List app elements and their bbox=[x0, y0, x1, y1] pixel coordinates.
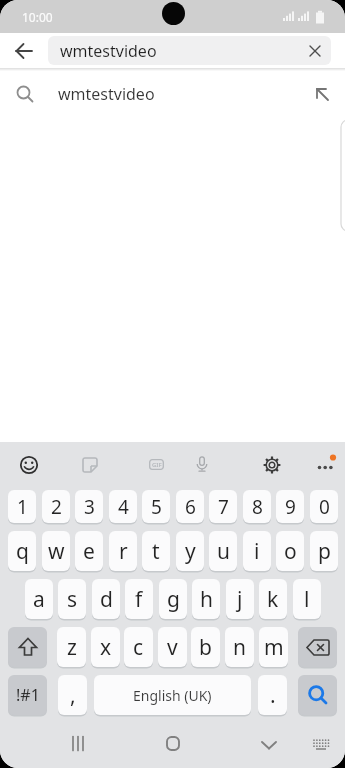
button[interactable] bbox=[261, 741, 277, 750]
staticText: r bbox=[119, 537, 128, 566]
staticText: k bbox=[267, 585, 279, 614]
staticText: i bbox=[254, 537, 260, 566]
button[interactable] bbox=[81, 456, 99, 474]
button[interactable]: z bbox=[57, 627, 86, 667]
staticText: w bbox=[48, 537, 65, 566]
staticText: wmtestvideo bbox=[60, 40, 157, 62]
button[interactable] bbox=[263, 456, 281, 474]
staticText: z bbox=[67, 633, 77, 662]
staticText: q bbox=[16, 537, 29, 566]
staticText: a bbox=[33, 585, 45, 614]
staticText: o bbox=[284, 537, 297, 566]
button[interactable] bbox=[8, 627, 47, 667]
staticText: n bbox=[233, 633, 246, 662]
button[interactable]: wmtestvideo bbox=[0, 71, 345, 117]
staticText: c bbox=[133, 633, 144, 662]
button[interactable]: e bbox=[75, 531, 103, 571]
button[interactable]: v bbox=[158, 627, 187, 667]
staticText: 9 bbox=[285, 494, 296, 520]
staticText: 7 bbox=[218, 494, 229, 520]
staticText: u bbox=[217, 537, 230, 566]
button[interactable]: 0 bbox=[310, 490, 338, 523]
button[interactable]: English (UK) bbox=[94, 675, 251, 715]
button[interactable] bbox=[312, 454, 338, 476]
button[interactable]: 4 bbox=[109, 490, 137, 523]
button[interactable]: 7 bbox=[209, 490, 237, 523]
staticText: 1 bbox=[17, 494, 28, 520]
button[interactable]: 1 bbox=[8, 490, 36, 523]
staticText: e bbox=[83, 537, 95, 566]
button[interactable]: s bbox=[58, 579, 86, 619]
staticText: s bbox=[67, 585, 78, 614]
button[interactable]: a bbox=[25, 579, 53, 619]
staticText: d bbox=[100, 585, 113, 614]
staticText: 6 bbox=[185, 494, 196, 520]
staticText: , bbox=[70, 681, 76, 710]
button[interactable]: t bbox=[142, 531, 170, 571]
staticText: b bbox=[199, 633, 212, 662]
button[interactable]: d bbox=[92, 579, 120, 619]
button[interactable]: o bbox=[276, 531, 304, 571]
button[interactable]: 9 bbox=[276, 490, 304, 523]
button[interactable] bbox=[71, 736, 86, 751]
button[interactable]: p bbox=[310, 531, 338, 571]
button[interactable]: i bbox=[243, 531, 271, 571]
staticText: !#1 bbox=[16, 684, 40, 706]
button[interactable]: y bbox=[176, 531, 204, 571]
staticText: j bbox=[237, 585, 243, 614]
button[interactable] bbox=[195, 456, 209, 473]
button[interactable] bbox=[298, 675, 337, 715]
button[interactable]: c bbox=[124, 627, 153, 667]
button[interactable]: 2 bbox=[42, 490, 70, 523]
button[interactable]: 5 bbox=[142, 490, 170, 523]
button[interactable]: f bbox=[125, 579, 153, 619]
button[interactable]: w bbox=[42, 531, 70, 571]
button[interactable]: h bbox=[192, 579, 220, 619]
staticText: l bbox=[304, 585, 310, 614]
staticText: 5 bbox=[151, 494, 162, 520]
button[interactable]: 6 bbox=[176, 490, 204, 523]
staticText: v bbox=[167, 633, 178, 662]
staticText: 10:00 bbox=[22, 9, 53, 25]
button[interactable] bbox=[309, 45, 321, 57]
staticText: h bbox=[200, 585, 213, 614]
staticText: f bbox=[135, 585, 143, 614]
button[interactable] bbox=[166, 736, 180, 751]
button[interactable] bbox=[20, 456, 38, 474]
staticText: wmtestvideo bbox=[58, 83, 155, 105]
button[interactable]: GIF bbox=[149, 459, 164, 470]
staticText: m bbox=[264, 633, 284, 662]
staticText: English (UK) bbox=[133, 686, 212, 705]
button[interactable]: . bbox=[258, 675, 287, 715]
staticText: y bbox=[185, 537, 196, 566]
button[interactable]: u bbox=[209, 531, 237, 571]
button[interactable]: 3 bbox=[75, 490, 103, 523]
button[interactable]: x bbox=[91, 627, 120, 667]
button[interactable]: !#1 bbox=[8, 675, 47, 715]
staticText: 3 bbox=[84, 494, 95, 520]
button[interactable]: m bbox=[259, 627, 288, 667]
staticText: p bbox=[318, 537, 331, 566]
button[interactable]: g bbox=[159, 579, 187, 619]
staticText: 4 bbox=[118, 494, 129, 520]
button[interactable] bbox=[15, 42, 33, 60]
button[interactable]: q bbox=[8, 531, 36, 571]
staticText: 0 bbox=[319, 494, 330, 520]
button[interactable] bbox=[315, 87, 330, 102]
button[interactable]: b bbox=[191, 627, 220, 667]
staticText: . bbox=[270, 681, 276, 710]
button[interactable]: j bbox=[226, 579, 254, 619]
button[interactable]: 8 bbox=[243, 490, 271, 523]
button[interactable] bbox=[298, 627, 337, 667]
staticText: 8 bbox=[252, 494, 263, 520]
button[interactable]: r bbox=[109, 531, 137, 571]
button[interactable]: n bbox=[225, 627, 254, 667]
button[interactable]: , bbox=[58, 675, 87, 715]
staticText: g bbox=[167, 585, 180, 614]
staticText: GIF bbox=[152, 461, 162, 469]
staticText: 2 bbox=[51, 494, 62, 520]
button[interactable]: l bbox=[293, 579, 321, 619]
button[interactable]: k bbox=[259, 579, 287, 619]
staticText: t bbox=[152, 537, 160, 566]
button[interactable] bbox=[312, 739, 330, 750]
